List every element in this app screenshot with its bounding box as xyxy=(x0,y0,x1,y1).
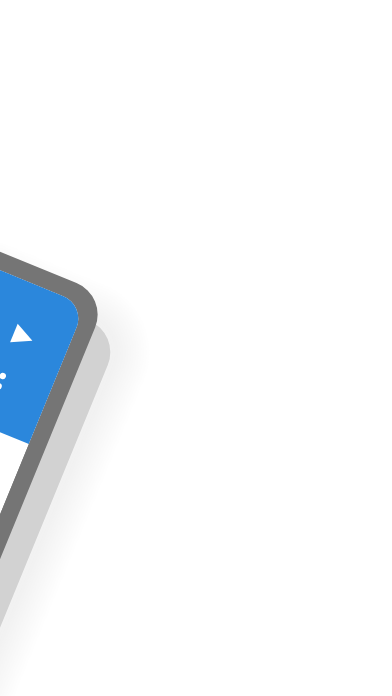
button[interactable]: Rotated phone app preview xyxy=(0,0,392,696)
